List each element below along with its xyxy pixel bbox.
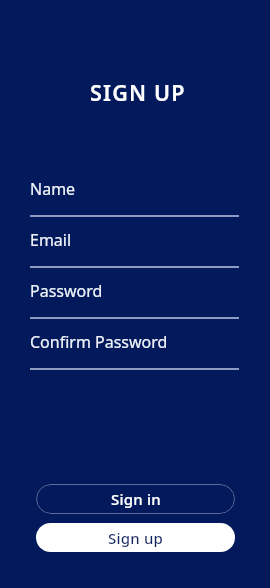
staticText: SIGN UP: [90, 78, 186, 107]
staticText: Email: [30, 229, 72, 251]
button[interactable]: Confirm Password: [30, 331, 239, 370]
staticText: Sign up: [108, 528, 164, 548]
button[interactable]: Sign in: [36, 484, 235, 514]
button[interactable]: Sign up: [36, 523, 235, 552]
staticText: Confirm Password: [30, 331, 168, 353]
button[interactable]: Email: [30, 229, 239, 268]
button[interactable]: Name: [30, 178, 239, 217]
staticText: Sign in: [111, 489, 161, 509]
button[interactable]: Password: [30, 280, 239, 319]
staticText: Password: [30, 280, 103, 302]
staticText: Name: [30, 178, 76, 200]
